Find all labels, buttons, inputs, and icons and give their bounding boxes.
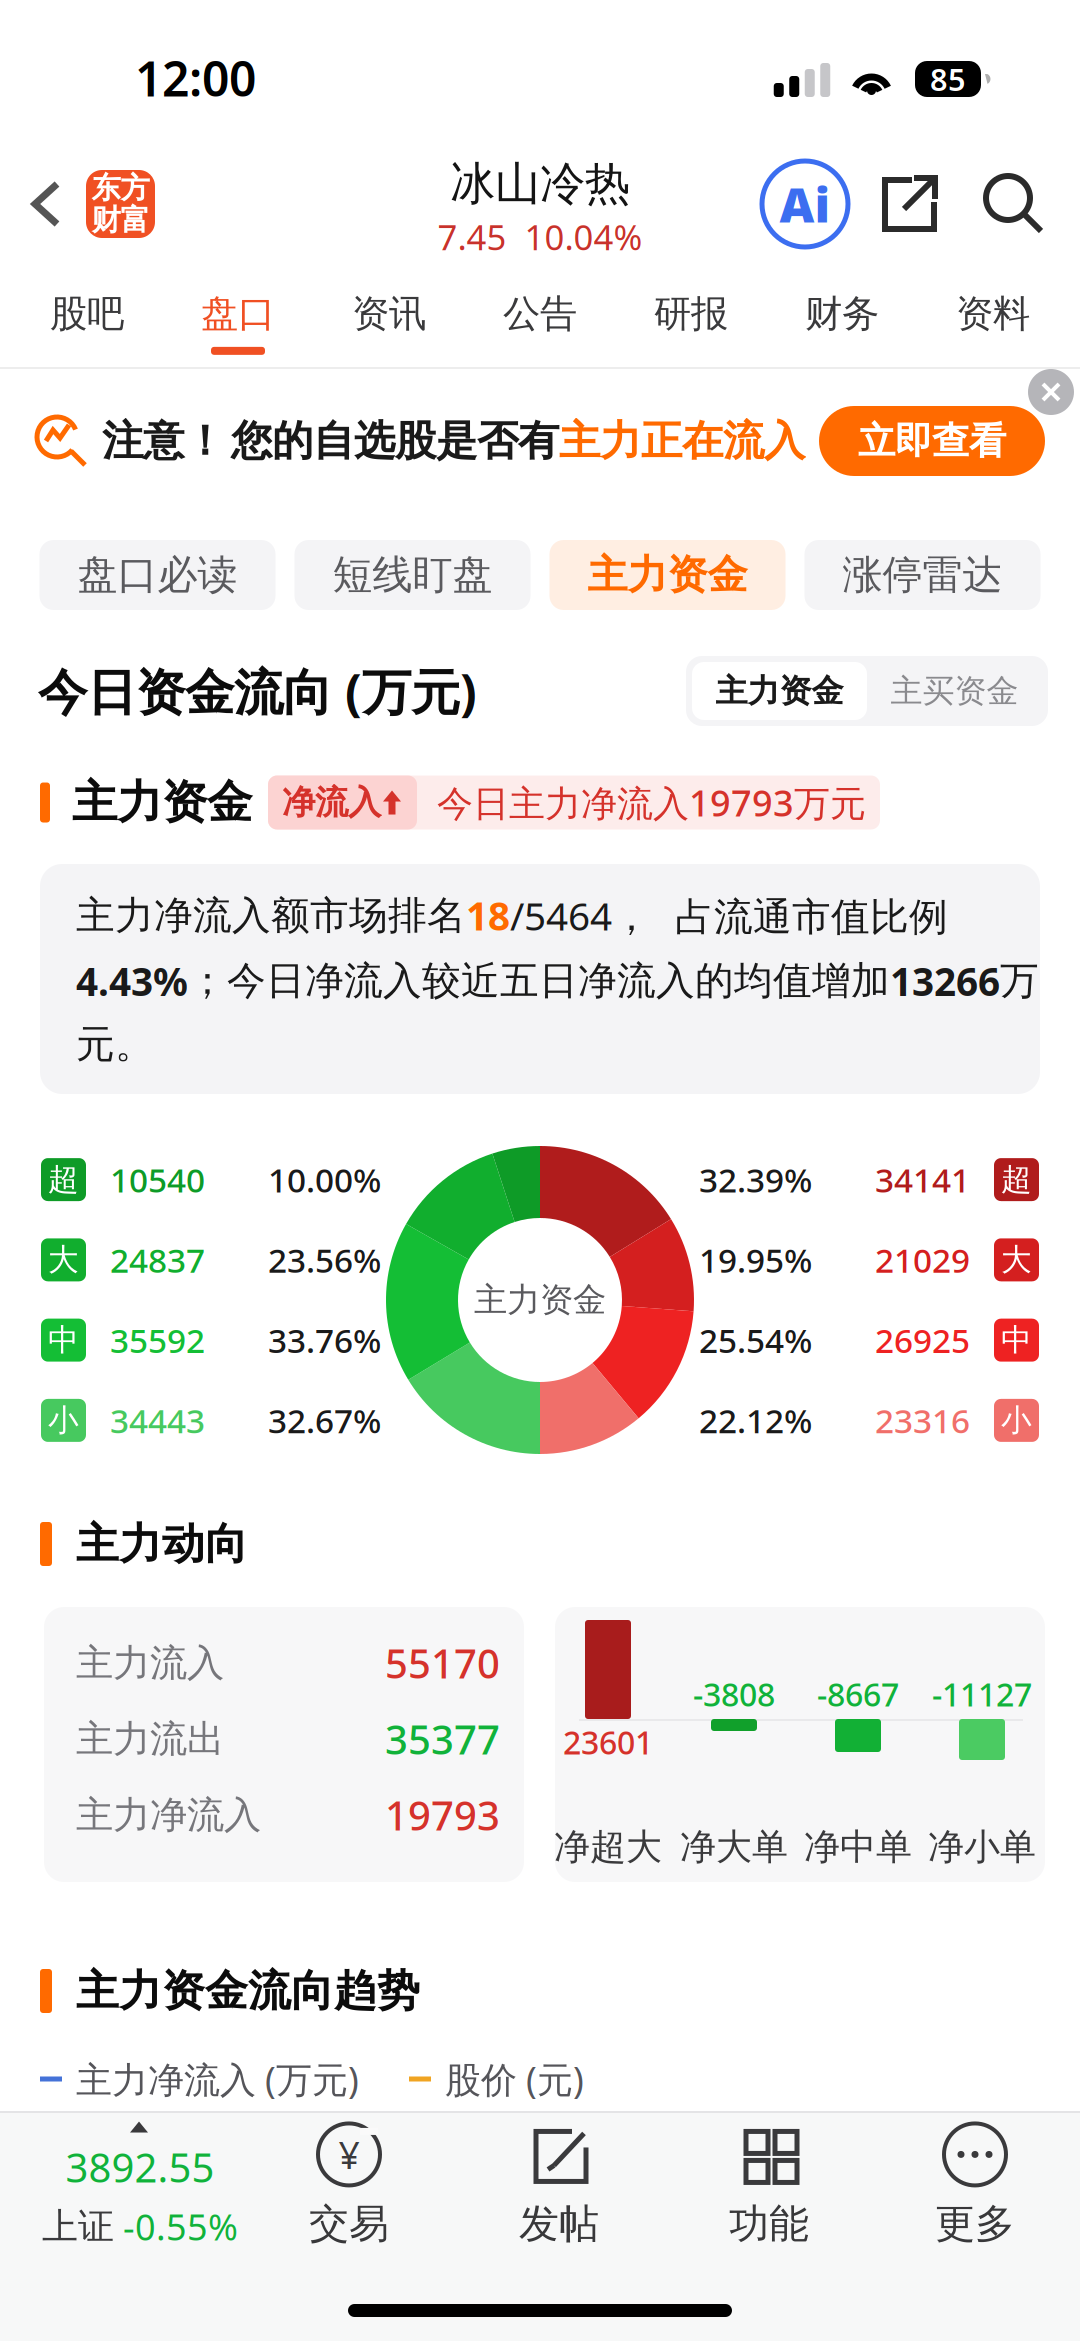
staticText: 13266 xyxy=(890,955,1000,1007)
button[interactable]: 财务 xyxy=(766,268,917,367)
button[interactable]: 公告 xyxy=(464,268,615,367)
staticText: 4.43% xyxy=(76,955,188,1007)
staticText: 更多 xyxy=(935,2199,1015,2248)
staticText: 股吧 xyxy=(50,291,124,337)
staticText: 34141 xyxy=(875,1157,970,1202)
staticText: 小 xyxy=(48,1402,79,1439)
staticText: 3892.55 xyxy=(65,2140,214,2194)
staticText: 23601 xyxy=(563,1721,653,1763)
staticText: 大 xyxy=(1001,1241,1032,1279)
staticText: 22.12% xyxy=(699,1398,812,1443)
staticText: -11127 xyxy=(932,1673,1032,1715)
staticText: 主力资金 xyxy=(72,775,252,830)
button[interactable]: 盘口 xyxy=(162,268,313,367)
staticText: 主力流出 xyxy=(76,1716,224,1762)
button[interactable]: 东方财富 xyxy=(86,170,155,238)
button[interactable]: 盘口必读 xyxy=(39,540,275,610)
staticText: 涨停雷达 xyxy=(842,550,1002,599)
staticText: 18 xyxy=(466,890,510,941)
staticText: 10.00% xyxy=(268,1157,381,1202)
staticText: 股价 (元) xyxy=(445,2055,584,2103)
button[interactable]: Search xyxy=(976,167,1050,241)
button[interactable]: Close xyxy=(1028,369,1074,415)
staticText: 净中单 xyxy=(804,1825,912,1869)
button[interactable]: 功能 xyxy=(694,2126,844,2246)
staticText: 35377 xyxy=(385,1712,500,1765)
staticText: 23316 xyxy=(875,1398,970,1443)
button[interactable]: 主买资金 xyxy=(867,662,1042,720)
staticText: 您的自选股是否有 xyxy=(231,416,559,466)
button[interactable]: 涨停雷达 xyxy=(804,540,1040,610)
staticText: 财务 xyxy=(805,291,879,337)
staticText: ；今日净流入较近五日净流入的均值增加 xyxy=(188,957,890,1005)
staticText: -0.55% xyxy=(123,2203,238,2250)
staticText: 东方 xyxy=(91,170,149,206)
staticText: 冰山冷热 xyxy=(450,156,630,212)
staticText: 35592 xyxy=(110,1318,205,1362)
staticText: 主力净流入额市场排名 xyxy=(76,892,466,939)
staticText: 34443 xyxy=(110,1398,205,1443)
button[interactable]: 发帖 xyxy=(484,2126,634,2246)
button[interactable]: 立即查看 xyxy=(819,406,1045,476)
staticText: 净流入 xyxy=(282,782,381,823)
button[interactable]: 短线盯盘 xyxy=(294,540,530,610)
staticText: 中 xyxy=(1001,1321,1032,1359)
button[interactable]: Share xyxy=(872,167,946,241)
staticText: 公告 xyxy=(503,291,577,337)
staticText: 小 xyxy=(1001,1402,1032,1439)
button[interactable]: Back xyxy=(16,160,78,248)
staticText: 净大单 xyxy=(680,1825,788,1869)
staticText: 中 xyxy=(48,1321,79,1359)
staticText: 主买资金 xyxy=(890,671,1018,711)
staticText: 净超大 xyxy=(554,1825,662,1869)
staticText: 85 xyxy=(930,59,966,99)
staticText: 功能 xyxy=(729,2199,809,2248)
staticText: 26925 xyxy=(875,1318,970,1362)
staticText: 12:00 xyxy=(135,46,256,110)
button[interactable]: 更多 xyxy=(900,2126,1050,2246)
staticText: 19793 xyxy=(385,1788,500,1841)
staticText: 资料 xyxy=(956,291,1030,337)
staticText: 超 xyxy=(48,1161,79,1198)
staticText: 主力流入 xyxy=(76,1640,224,1686)
staticText: 10.04% xyxy=(524,214,642,260)
staticText: 今日主力净流入19793万元 xyxy=(437,779,866,826)
staticText: ¥ xyxy=(338,2130,359,2179)
staticText: 主力资金 xyxy=(474,1279,606,1320)
staticText: 主力净流入 (万元) xyxy=(76,2055,359,2103)
staticText: 主力资金流向趋势 xyxy=(76,1965,420,2017)
staticText: Ai xyxy=(779,172,830,236)
button[interactable]: 资讯 xyxy=(313,268,464,367)
staticText: 主力净流入 xyxy=(76,1792,261,1838)
staticText: 研报 xyxy=(654,291,728,337)
staticText: 注意！ xyxy=(102,416,225,466)
staticText: 24837 xyxy=(110,1238,205,1282)
button[interactable]: 股吧 xyxy=(11,268,162,367)
staticText: 19.95% xyxy=(699,1238,812,1282)
staticText: 资讯 xyxy=(352,291,426,337)
staticText: 主力正在流入 xyxy=(559,416,805,466)
staticText: 盘口必读 xyxy=(77,550,237,599)
staticText: -8667 xyxy=(817,1673,899,1715)
staticText: 净小单 xyxy=(928,1825,1036,1869)
staticText: -3808 xyxy=(693,1673,775,1715)
staticText: 短线盯盘 xyxy=(332,550,492,599)
staticText: 32.67% xyxy=(268,1398,381,1443)
staticText: 主力资金 xyxy=(587,550,747,599)
staticText: 盘口 xyxy=(201,291,275,337)
button[interactable]: 研报 xyxy=(615,268,766,367)
staticText: 交易 xyxy=(309,2199,389,2248)
button[interactable]: 主力资金 xyxy=(692,662,867,720)
staticText: 上证 xyxy=(42,2204,114,2249)
staticText: 财富 xyxy=(91,202,149,238)
button[interactable]: 3892.55 xyxy=(28,2126,252,2246)
button[interactable]: AI xyxy=(762,161,848,247)
button[interactable]: 资料 xyxy=(917,268,1068,367)
staticText: 超 xyxy=(1001,1161,1032,1198)
button[interactable]: 主力资金 xyxy=(549,540,785,610)
staticText: 10540 xyxy=(110,1157,205,1202)
staticText: 25.54% xyxy=(699,1318,812,1362)
staticText: 21029 xyxy=(875,1238,970,1282)
button[interactable]: ¥ xyxy=(274,2126,424,2246)
staticText: 33.76% xyxy=(268,1318,381,1362)
